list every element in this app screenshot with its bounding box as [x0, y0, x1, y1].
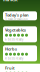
- button[interactable]: Vegetables: [3, 26, 37, 42]
- staticText: 3 tasks remaining: [5, 18, 28, 21]
- button[interactable]: Today's plan: [3, 11, 37, 20]
- staticText: Vegetables: [5, 27, 26, 33]
- staticText: 4 beds ready: [5, 57, 23, 60]
- staticText: Grow your own harvest: [3, 0, 33, 2]
- staticText: 6 beds ready: [5, 38, 23, 41]
- staticText: Fruit: [5, 65, 15, 71]
- staticText: Herbs: [5, 46, 17, 52]
- button[interactable]: Herbs: [3, 45, 37, 61]
- button[interactable]: Fruit: [3, 64, 37, 72]
- staticText: Today's plan: [5, 12, 29, 18]
